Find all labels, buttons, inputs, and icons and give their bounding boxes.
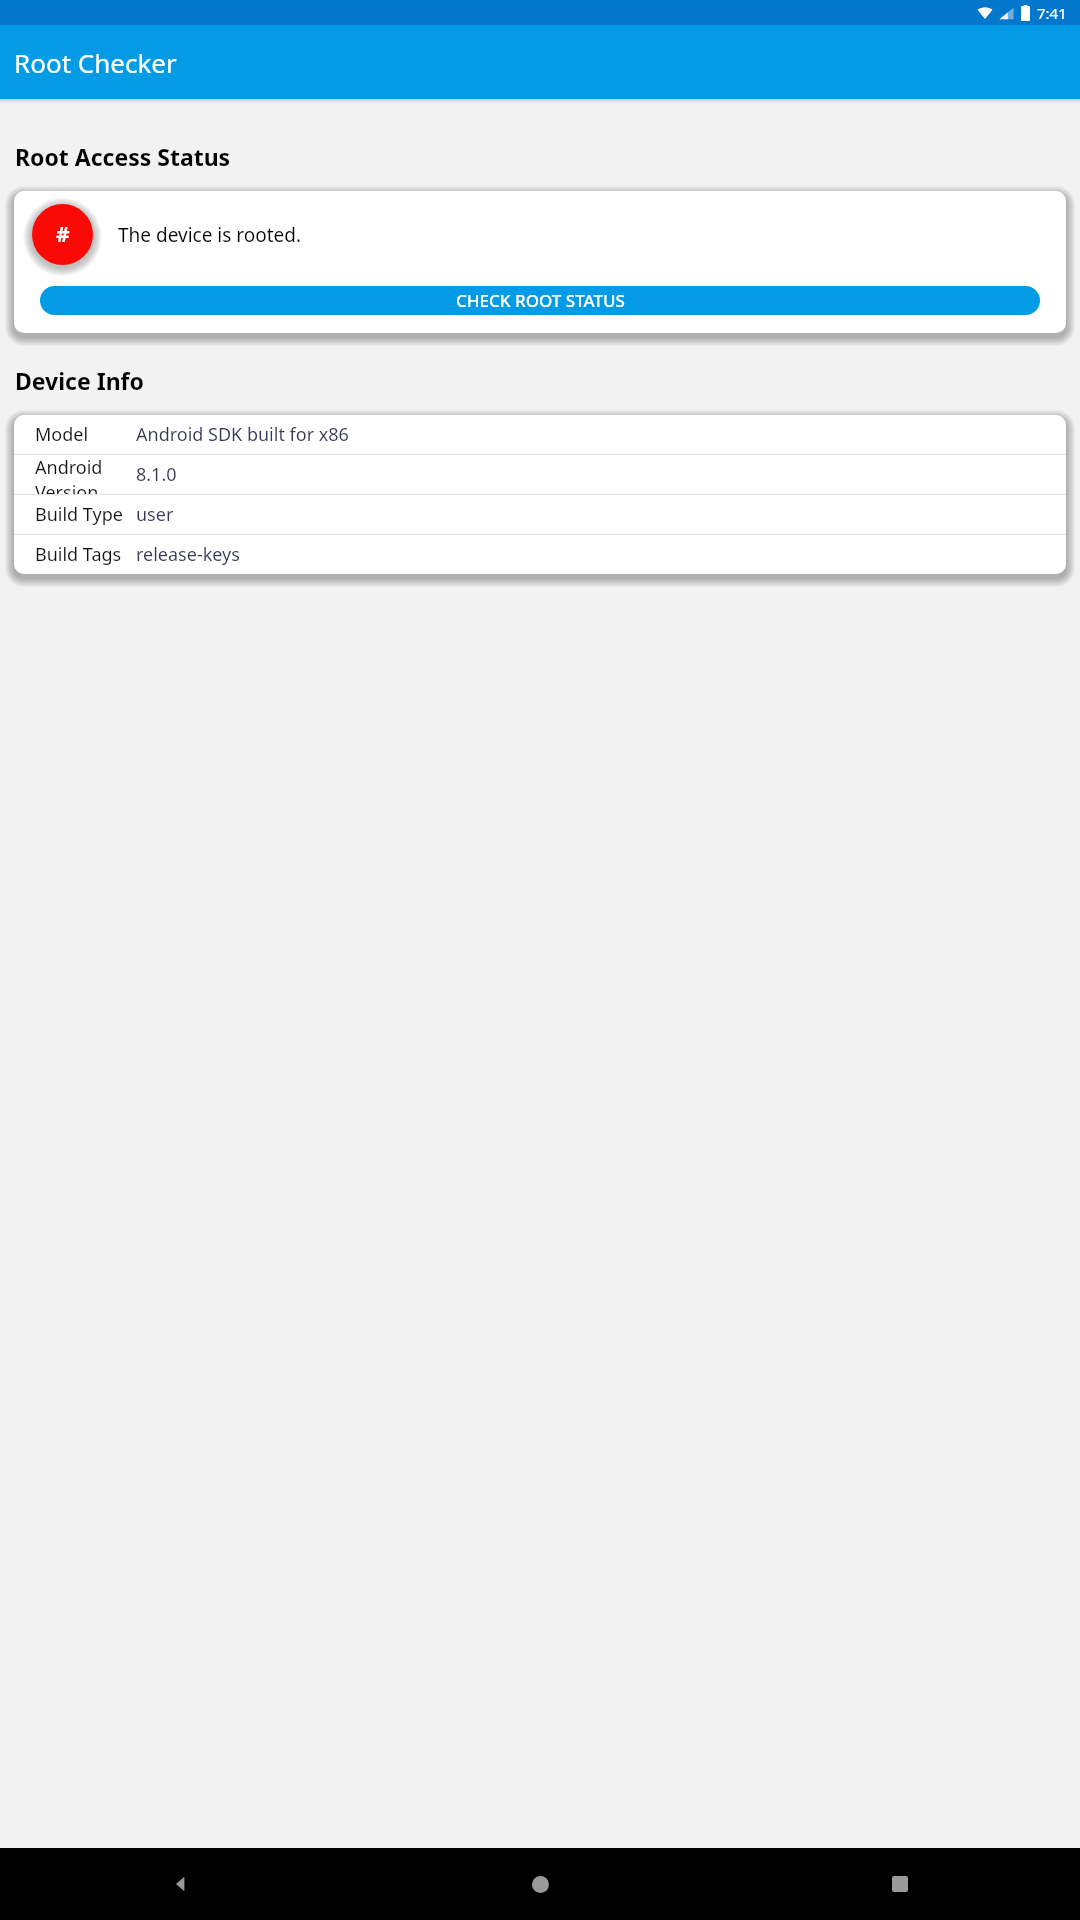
- button[interactable]: Recent apps: [720, 1848, 1080, 1920]
- staticText: The device is rooted.: [118, 222, 302, 248]
- staticText: Root Checker: [14, 45, 177, 80]
- staticText: #: [56, 220, 70, 249]
- button[interactable]: CHECK ROOT STATUS: [40, 286, 1040, 315]
- button[interactable]: Back: [0, 1848, 360, 1920]
- staticText: 7:41: [1037, 3, 1067, 23]
- staticText: 8.1.0: [136, 462, 177, 487]
- staticText: Root Access Status: [15, 141, 231, 172]
- button[interactable]: Build Type: [14, 495, 1066, 534]
- staticText: Device Info: [15, 365, 144, 396]
- staticText: Model: [35, 422, 89, 447]
- staticText: Android SDK built for x86: [136, 422, 349, 447]
- staticText: user: [136, 502, 174, 527]
- staticText: Build Type: [35, 502, 123, 527]
- button[interactable]: Home: [360, 1848, 720, 1920]
- button[interactable]: Build Tags: [14, 535, 1066, 574]
- staticText: CHECK ROOT STATUS: [456, 289, 625, 312]
- staticText: Build Tags: [35, 542, 122, 567]
- button[interactable]: Android Version: [14, 455, 1066, 494]
- button[interactable]: Model: [14, 415, 1066, 454]
- staticText: release-keys: [136, 542, 240, 567]
- staticText: Android Version: [35, 455, 136, 494]
